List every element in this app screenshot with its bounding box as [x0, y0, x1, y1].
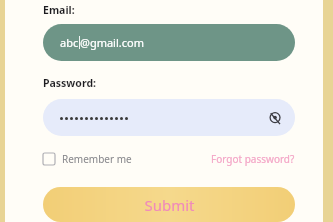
staticText: Password:: [43, 76, 96, 90]
staticText: Email:: [43, 3, 75, 17]
staticText: @gmail.com: [80, 35, 144, 50]
staticText: abc: [60, 35, 79, 50]
button[interactable]: abc: [43, 24, 295, 61]
button[interactable]: Hide password: [43, 99, 295, 136]
button[interactable]: Remember me: [43, 149, 132, 169]
staticText: Submit: [144, 195, 195, 215]
staticText: Remember me: [62, 152, 132, 166]
staticText: Forgot password?: [211, 152, 295, 166]
button[interactable]: Hide password: [265, 108, 285, 128]
button[interactable]: Submit: [43, 187, 295, 222]
button[interactable]: Forgot password?: [211, 149, 295, 169]
